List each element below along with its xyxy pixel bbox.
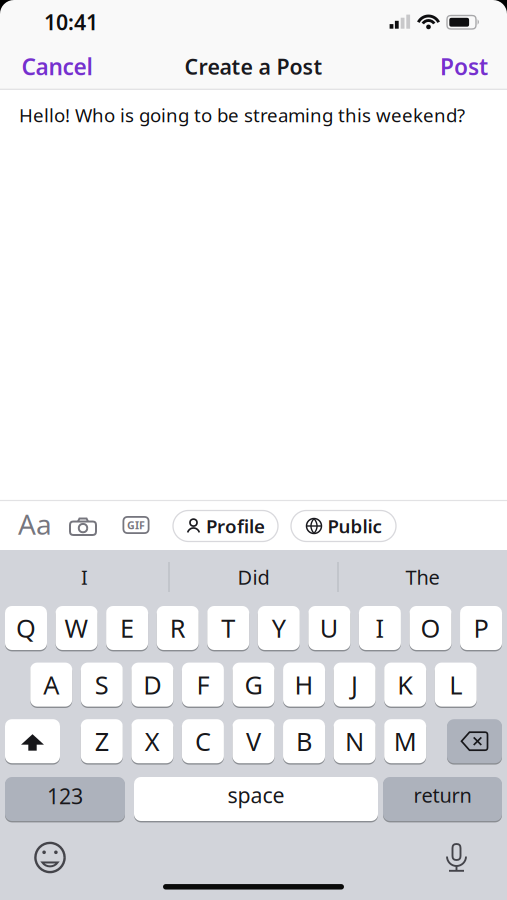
button[interactable]: H [283, 662, 325, 708]
button[interactable]: K [384, 662, 426, 708]
staticText: Public [327, 514, 381, 538]
staticText: Cancel [21, 51, 92, 81]
button[interactable]: Profile [173, 510, 278, 541]
staticText: F [196, 668, 209, 701]
button[interactable]: Post [440, 51, 488, 81]
staticText: E [120, 611, 134, 645]
button[interactable]: A [30, 662, 72, 708]
staticText: Y [272, 611, 286, 645]
staticText: GIF [127, 518, 145, 532]
button[interactable]: B [283, 718, 325, 764]
button[interactable] [445, 843, 467, 873]
staticText: I [81, 564, 88, 590]
button[interactable]: space [134, 776, 378, 822]
staticText: Z [95, 724, 109, 758]
staticText: A [43, 668, 59, 701]
button[interactable]: Y [258, 605, 300, 651]
button[interactable]: The [405, 564, 439, 590]
staticText: X [145, 724, 160, 758]
staticText: 123 [47, 782, 83, 810]
button[interactable]: return [383, 776, 502, 822]
button[interactable]: Public [291, 510, 396, 541]
staticText: U [320, 611, 339, 645]
staticText: J [351, 668, 358, 701]
staticText: 10:41 [44, 8, 98, 36]
staticText: T [221, 611, 235, 645]
staticText: The [405, 564, 439, 590]
button[interactable]: D [131, 662, 173, 708]
staticText: Aa [18, 505, 52, 543]
button[interactable]: W [56, 605, 98, 651]
staticText: M [394, 724, 417, 758]
staticText: G [244, 668, 262, 701]
button[interactable]: S [81, 662, 123, 708]
staticText: Create a Post [184, 52, 322, 81]
staticText: C [195, 724, 211, 758]
staticText: R [170, 611, 186, 645]
button[interactable]: O [409, 605, 451, 651]
button[interactable]: Z [81, 718, 123, 764]
button[interactable]: E [106, 605, 148, 651]
button[interactable]: T [207, 605, 249, 651]
button[interactable]: Cancel [21, 51, 92, 81]
staticText: Q [16, 611, 36, 645]
button[interactable]: Q [5, 605, 47, 651]
button[interactable]: V [232, 718, 274, 764]
button[interactable] [69, 516, 97, 535]
staticText: Post [440, 51, 488, 81]
button[interactable]: N [334, 718, 376, 764]
button[interactable]: C [182, 718, 224, 764]
button[interactable]: 123 [5, 776, 125, 822]
button[interactable]: F [182, 662, 224, 708]
staticText: space [227, 781, 284, 809]
button[interactable]: R [157, 605, 199, 651]
staticText: Profile [206, 514, 265, 538]
button[interactable]: P [460, 605, 502, 651]
button[interactable] [34, 842, 66, 874]
button[interactable]: I [81, 564, 88, 590]
button[interactable]: G [232, 662, 274, 708]
staticText: I [375, 611, 384, 645]
button[interactable]: J [334, 662, 376, 708]
staticText: D [143, 668, 161, 701]
staticText: P [473, 611, 488, 645]
staticText: Did [237, 564, 269, 590]
staticText: B [296, 724, 312, 758]
button[interactable]: X [131, 718, 173, 764]
staticText: return [413, 782, 471, 808]
button[interactable] [5, 718, 60, 764]
staticText: H [295, 668, 314, 701]
staticText: N [345, 724, 364, 758]
button[interactable]: I [359, 605, 401, 651]
staticText: K [397, 668, 413, 701]
button[interactable] [447, 718, 502, 764]
staticText: W [65, 611, 89, 645]
staticText: O [420, 611, 440, 645]
staticText: Hello! Who is going to be streaming this… [19, 103, 465, 127]
button[interactable]: M [384, 718, 426, 764]
button[interactable]: Aa [18, 505, 52, 543]
staticText: V [246, 724, 261, 758]
staticText: L [449, 668, 462, 701]
staticText: S [95, 668, 109, 701]
button[interactable]: U [308, 605, 350, 651]
button[interactable]: GIF [122, 516, 149, 534]
button[interactable]: Did [237, 564, 269, 590]
button[interactable]: L [435, 662, 477, 708]
